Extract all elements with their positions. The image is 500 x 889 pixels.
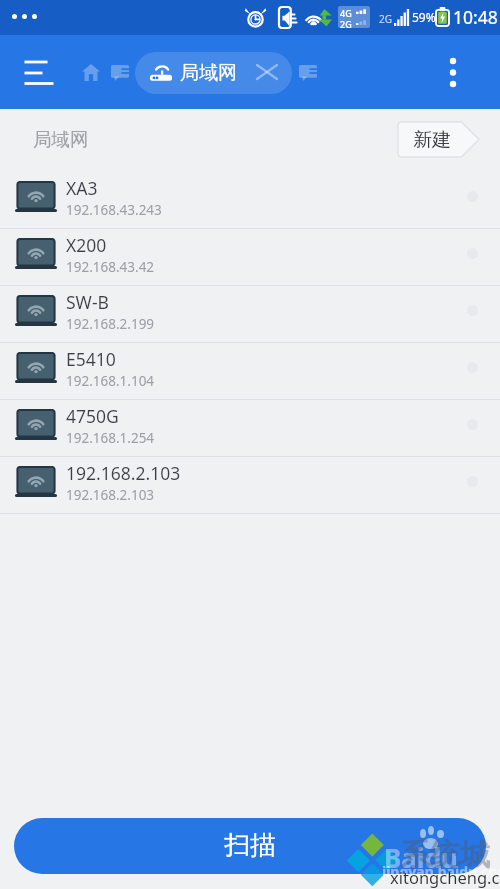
button[interactable]: XA3: [0, 172, 500, 228]
button[interactable]: 局域网: [135, 52, 292, 94]
staticText: 59%: [412, 9, 436, 25]
staticText: jingyan.baidu.com: [382, 862, 500, 881]
staticText: 192.168.43.42: [66, 258, 155, 276]
button[interactable]: More options: [436, 47, 472, 83]
staticText: 局域网: [33, 128, 89, 151]
staticText: 192.168.2.103: [66, 486, 155, 504]
staticText: 新建: [413, 128, 451, 152]
button[interactable]: Messages: [299, 65, 317, 81]
staticText: xitongcheng.com: [390, 866, 500, 888]
button[interactable]: 4750G: [0, 400, 500, 456]
button[interactable]: 192.168.2.103: [0, 457, 500, 513]
staticText: 扫描: [224, 829, 276, 862]
button[interactable]: SW-B: [0, 286, 500, 342]
staticText: 192.168.1.254: [66, 429, 155, 447]
staticText: SW-B: [66, 290, 109, 314]
staticText: 192.168.43.243: [66, 201, 162, 219]
staticText: 2G: [340, 18, 352, 28]
staticText: 192.168.1.104: [66, 372, 155, 390]
button[interactable]: X200: [0, 229, 500, 285]
staticText: 10:48: [453, 5, 498, 29]
staticText: 系统城: [400, 836, 490, 874]
staticText: 192.168.2.103: [66, 461, 181, 485]
staticText: 4750G: [66, 404, 119, 428]
staticText: 192.168.2.199: [66, 315, 155, 333]
button[interactable]: Messages: [111, 65, 129, 81]
staticText: X200: [66, 233, 107, 257]
staticText: XA3: [66, 176, 98, 200]
staticText: 局域网: [180, 61, 237, 85]
button[interactable]: Close: [256, 64, 278, 80]
staticText: Baidu: [384, 840, 458, 875]
button[interactable]: 新建: [398, 122, 479, 157]
staticText: E5410: [66, 347, 116, 371]
staticText: 4G: [340, 7, 352, 19]
button[interactable]: Home: [76, 57, 106, 87]
staticText: 2G: [379, 12, 392, 26]
button[interactable]: E5410: [0, 343, 500, 399]
button[interactable]: Menu: [16, 47, 62, 91]
button[interactable]: 扫描: [14, 818, 486, 874]
